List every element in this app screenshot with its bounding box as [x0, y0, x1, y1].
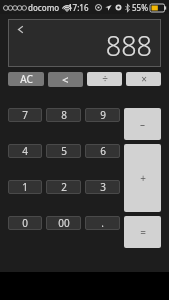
button[interactable]: ÷ — [87, 72, 122, 86]
button[interactable]: 5 — [46, 144, 81, 158]
staticText: 0 — [22, 216, 28, 230]
staticText: AC — [20, 72, 33, 86]
button[interactable]: 8 — [46, 108, 81, 122]
button[interactable]: 2 — [46, 180, 81, 194]
button[interactable]: – — [124, 108, 161, 140]
staticText: ÷ — [102, 72, 108, 86]
staticText: 00 — [58, 216, 70, 230]
staticText: 5 — [61, 144, 67, 158]
staticText: 8 — [61, 108, 67, 122]
staticText: 17:16 — [68, 2, 89, 13]
staticText: 888 — [105, 27, 152, 64]
button[interactable]: Backspace — [12, 21, 28, 37]
button[interactable]: < — [48, 72, 83, 87]
staticText: docomo — [28, 2, 60, 13]
button[interactable]: 9 — [85, 108, 120, 122]
button[interactable]: 3 — [85, 180, 120, 194]
staticText: + — [140, 171, 146, 185]
button[interactable]: × — [126, 72, 161, 86]
button[interactable]: 4 — [8, 144, 42, 158]
button[interactable]: . — [85, 216, 120, 230]
button[interactable]: 1 — [8, 180, 42, 194]
staticText: – — [140, 117, 145, 131]
staticText: < — [62, 72, 69, 87]
staticText: 9 — [100, 108, 106, 122]
staticText: 3 — [100, 180, 106, 194]
button[interactable]: 7 — [8, 108, 42, 122]
button[interactable]: + — [124, 144, 161, 212]
staticText: = — [140, 225, 146, 239]
staticText: 7 — [22, 108, 28, 122]
button[interactable]: 00 — [46, 216, 81, 230]
staticText: × — [141, 72, 147, 86]
button[interactable]: 6 — [85, 144, 120, 158]
staticText: . — [101, 216, 104, 230]
staticText: 55% — [132, 2, 148, 13]
button[interactable]: 0 — [8, 216, 42, 230]
staticText: 4 — [22, 144, 28, 158]
button[interactable]: AC — [8, 72, 44, 86]
staticText: 6 — [100, 144, 106, 158]
staticText: 2 — [61, 180, 67, 194]
staticText: 1 — [22, 180, 28, 194]
button[interactable]: = — [124, 216, 161, 248]
